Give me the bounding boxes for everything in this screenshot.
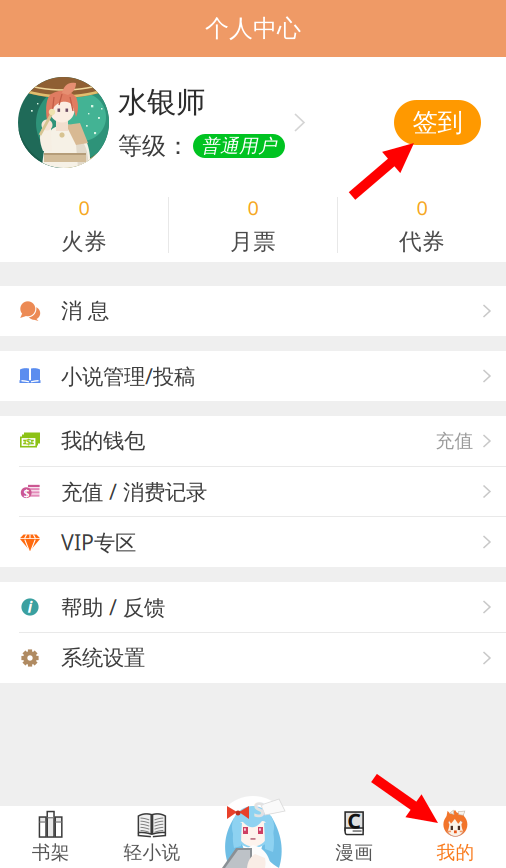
staticText: $ xyxy=(26,436,31,448)
staticText: 充值 / 消费记录 xyxy=(61,477,207,506)
staticText: VIP专区 xyxy=(61,528,136,556)
button[interactable]: 系统设置 xyxy=(0,633,506,683)
staticText: 个人中心 xyxy=(205,14,301,43)
staticText: 小说管理/投稿 xyxy=(61,362,195,390)
staticText: 代券 xyxy=(399,228,445,256)
staticText: 消 息 xyxy=(61,298,109,324)
button[interactable]: 消 息 xyxy=(0,286,506,336)
staticText: 等级： xyxy=(118,131,190,161)
staticText: 0 xyxy=(78,194,89,221)
staticText: $ xyxy=(23,486,29,500)
staticText: 系统设置 xyxy=(61,645,145,671)
staticText: 我的 xyxy=(436,841,474,864)
button[interactable]: $ xyxy=(0,416,506,466)
staticText: 签到 xyxy=(412,107,462,138)
staticText: S xyxy=(253,795,265,823)
staticText: 0 xyxy=(247,194,258,221)
staticText: 充值 xyxy=(435,429,473,452)
button[interactable]: 签到 xyxy=(394,100,481,145)
staticText: C xyxy=(347,806,361,835)
staticText: 普通用户 xyxy=(201,135,277,157)
staticText: 我的钱包 xyxy=(61,428,145,454)
staticText: i xyxy=(27,596,32,617)
staticText: 0 xyxy=(416,194,427,221)
staticText: 水银师 xyxy=(118,84,205,120)
staticText: 帮助 / 反馈 xyxy=(61,593,165,621)
button[interactable]: C xyxy=(303,806,405,868)
button[interactable]: i xyxy=(0,582,506,632)
button[interactable]: 轻小说 xyxy=(101,806,202,868)
staticText: 漫画 xyxy=(335,841,373,864)
button[interactable]: VIP专区 xyxy=(0,517,506,567)
staticText: 轻小说 xyxy=(123,841,180,864)
button[interactable]: 小说管理/投稿 xyxy=(0,351,506,401)
staticText: 月票 xyxy=(230,228,276,256)
button[interactable]: $ xyxy=(0,467,506,516)
button[interactable]: 0 xyxy=(0,189,168,260)
button[interactable]: 0 xyxy=(169,189,337,260)
staticText: 书架 xyxy=(32,841,70,864)
button[interactable]: 书架 xyxy=(0,806,101,868)
button[interactable]: 0 xyxy=(338,189,506,260)
button[interactable]: 我的 xyxy=(405,806,506,868)
staticText: 火券 xyxy=(61,228,107,256)
